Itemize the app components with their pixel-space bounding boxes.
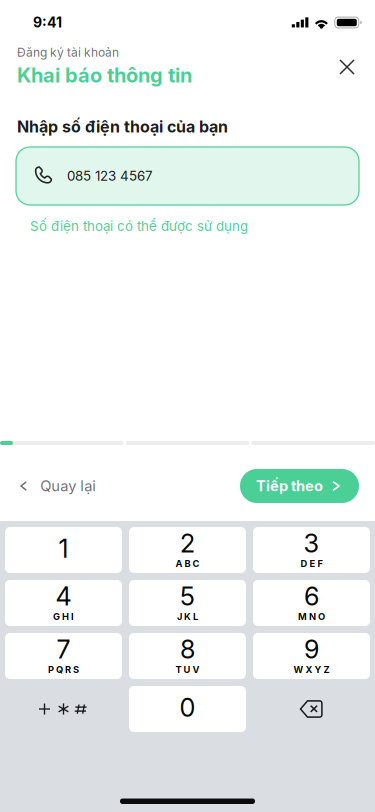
button[interactable]: 5 [129, 580, 246, 626]
staticText: 8 [180, 634, 195, 665]
staticText: P Q R S [48, 664, 79, 675]
button[interactable]: Tiếp theo [240, 469, 359, 503]
button[interactable]: 0 [129, 686, 246, 732]
button[interactable]: 1 [5, 527, 122, 573]
button[interactable]: 7 [5, 633, 122, 679]
button[interactable]: 8 [129, 633, 246, 679]
button[interactable]: 9 [253, 633, 370, 679]
button[interactable]: 3 [253, 527, 370, 573]
staticText: 4 [55, 581, 71, 612]
button[interactable]: Plus star pound [5, 686, 122, 732]
staticText: Khai báo thông tin [17, 63, 192, 87]
staticText: 085 123 4567 [67, 168, 153, 184]
button[interactable]: 2 [129, 527, 246, 573]
staticText: 9:41 [33, 14, 62, 31]
button[interactable]: 4 [5, 580, 122, 626]
staticText: G H I [53, 611, 74, 622]
staticText: Đăng ký tài khoản [17, 45, 119, 59]
staticText: D E F [300, 558, 322, 569]
staticText: M N O [298, 611, 325, 622]
staticText: 0 [179, 692, 195, 723]
staticText: Số điện thoại có thể được sử dụng [30, 218, 248, 234]
staticText: W X Y Z [293, 664, 329, 675]
button[interactable]: Close [325, 45, 369, 89]
button[interactable]: 6 [253, 580, 370, 626]
staticText: 9 [304, 634, 319, 665]
button[interactable]: Quay lại [0, 448, 110, 524]
staticText: T U V [175, 664, 199, 675]
staticText: A B C [175, 558, 199, 569]
staticText: Nhập số điện thoại của bạn [17, 117, 228, 136]
staticText: 6 [304, 581, 319, 612]
staticText: 7 [56, 634, 70, 665]
staticText: 1 [58, 533, 68, 564]
staticText: J K L [177, 611, 198, 622]
staticText: 2 [180, 528, 195, 559]
staticText: Quay lại [40, 477, 96, 495]
staticText: Tiếp theo [256, 477, 323, 495]
staticText: 3 [303, 528, 319, 559]
button[interactable]: Delete [253, 686, 370, 732]
staticText: 5 [180, 581, 195, 612]
